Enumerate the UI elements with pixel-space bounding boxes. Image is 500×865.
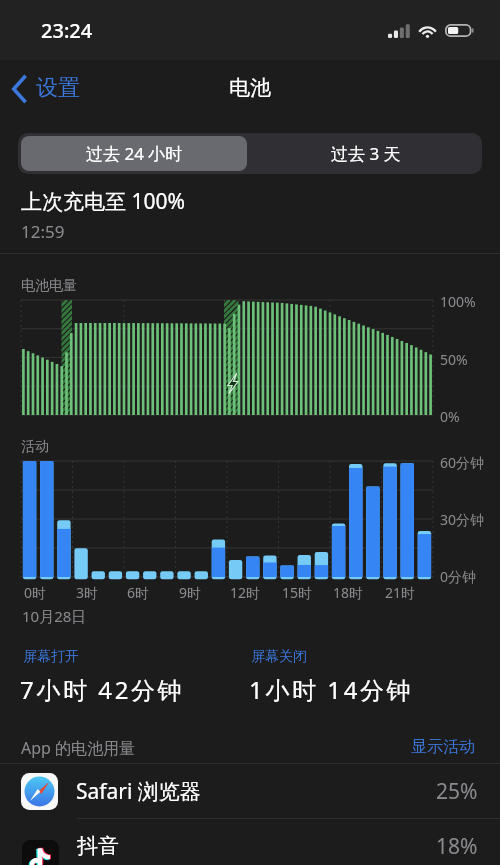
staticText: 12:59 <box>21 220 65 243</box>
staticText: 100% <box>440 292 476 311</box>
staticText: 电池电量 <box>21 277 77 295</box>
button[interactable]: 抖音 <box>0 819 500 865</box>
staticText: 10月28日 <box>22 606 87 626</box>
staticText: 1小时 14分钟 <box>249 673 414 706</box>
staticText: 18% <box>436 832 478 861</box>
staticText: 50% <box>440 350 468 369</box>
staticText: 活动 <box>21 438 49 456</box>
other: Back <box>11 74 28 104</box>
staticText: 21时 <box>385 583 416 602</box>
staticText: 30分钟 <box>440 510 485 529</box>
staticText: 7小时 42分钟 <box>20 673 185 706</box>
staticText: 屏幕打开 <box>23 648 79 666</box>
staticText: 显示活动 <box>411 737 475 757</box>
staticText: 3时 <box>76 583 99 602</box>
button[interactable]: Safari 浏览器 <box>0 764 500 818</box>
staticText: 0分钟 <box>440 567 477 586</box>
staticText: 23:24 <box>41 17 93 44</box>
staticText: Safari 浏览器 <box>76 777 201 806</box>
staticText: 6时 <box>127 583 150 602</box>
button[interactable]: 过去 24 小时 <box>21 136 247 171</box>
staticText: 0时 <box>24 583 47 602</box>
staticText: 15时 <box>282 583 313 602</box>
staticText: 60分钟 <box>440 453 485 472</box>
button[interactable]: 显示活动 <box>411 737 475 757</box>
staticText: 18时 <box>333 583 364 602</box>
staticText: 电池 <box>229 75 271 101</box>
staticText: 设置 <box>36 74 80 102</box>
staticText: App 的电池用量 <box>21 737 136 759</box>
staticText: 12时 <box>230 583 261 602</box>
staticText: 9时 <box>179 583 202 602</box>
staticText: 抖音 <box>77 833 119 859</box>
staticText: 过去 24 小时 <box>86 142 183 165</box>
staticText: 0% <box>440 407 460 426</box>
staticText: 25% <box>436 777 478 806</box>
staticText: 过去 3 天 <box>331 142 401 165</box>
button[interactable]: Back <box>11 74 80 104</box>
staticText: 上次充电至 100% <box>21 187 185 216</box>
staticText: 屏幕关闭 <box>251 648 307 666</box>
button[interactable]: 过去 3 天 <box>250 133 482 174</box>
